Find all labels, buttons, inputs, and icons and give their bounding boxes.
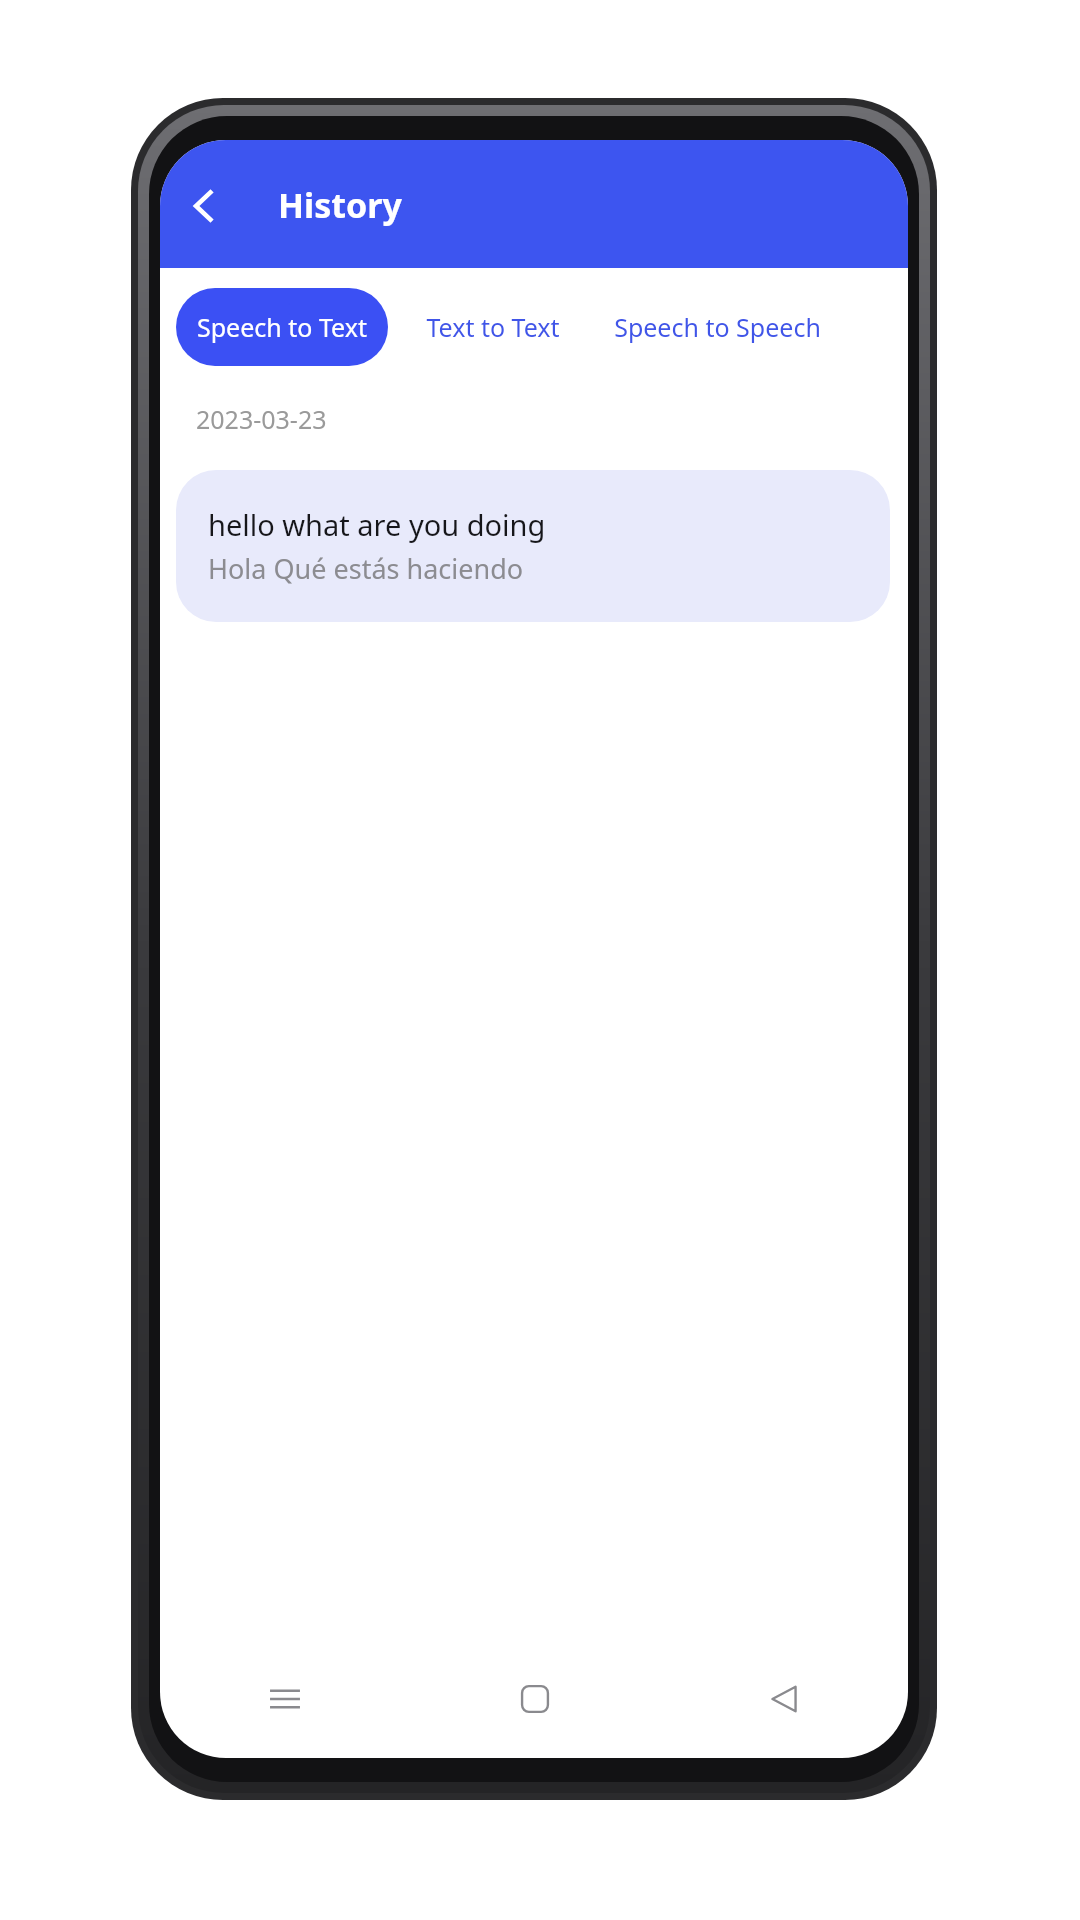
- staticText: hello what are you doing: [208, 505, 546, 544]
- button[interactable]: hello what are you doing: [176, 470, 890, 622]
- button[interactable]: Speech to Text: [176, 288, 388, 366]
- button[interactable]: Speech to Speech: [592, 288, 842, 366]
- button[interactable]: Back: [168, 170, 240, 242]
- staticText: Speech to Speech: [614, 310, 821, 344]
- button[interactable]: Home: [410, 1654, 659, 1744]
- staticText: Text to Text: [426, 310, 560, 344]
- staticText: Hola Qué estás haciendo: [208, 550, 524, 587]
- staticText: History: [278, 182, 402, 228]
- button[interactable]: Text to Text: [400, 288, 586, 366]
- staticText: 2023-03-23: [196, 402, 327, 436]
- button[interactable]: Recent apps: [160, 1654, 410, 1744]
- button[interactable]: Back: [659, 1654, 908, 1744]
- staticText: Speech to Text: [197, 310, 367, 344]
